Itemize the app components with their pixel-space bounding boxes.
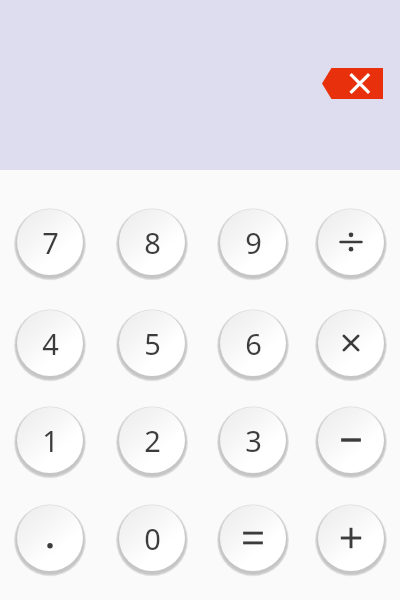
staticText: 9 bbox=[245, 223, 262, 262]
button[interactable]: 7 bbox=[16, 208, 84, 276]
button[interactable]: 5 bbox=[118, 309, 186, 377]
button[interactable] bbox=[16, 504, 84, 572]
button[interactable]: 9 bbox=[219, 208, 287, 276]
button[interactable]: 3 bbox=[219, 406, 287, 474]
staticText: 4 bbox=[42, 324, 59, 363]
button[interactable]: 1 bbox=[16, 406, 84, 474]
button[interactable] bbox=[219, 504, 287, 572]
button[interactable]: Delete bbox=[322, 68, 383, 99]
button[interactable]: 6 bbox=[219, 309, 287, 377]
staticText: 2 bbox=[144, 421, 161, 460]
button[interactable]: 4 bbox=[16, 309, 84, 377]
button[interactable]: 8 bbox=[118, 208, 186, 276]
button[interactable] bbox=[317, 208, 385, 276]
staticText: 6 bbox=[245, 324, 262, 363]
staticText: 7 bbox=[42, 223, 59, 262]
button[interactable] bbox=[317, 504, 385, 572]
staticText: 3 bbox=[245, 421, 262, 460]
button[interactable]: 2 bbox=[118, 406, 186, 474]
button[interactable] bbox=[317, 309, 385, 377]
staticText: 5 bbox=[144, 324, 161, 363]
button[interactable] bbox=[317, 406, 385, 474]
staticText: 1 bbox=[42, 421, 59, 460]
button[interactable]: 0 bbox=[118, 504, 186, 572]
staticText: 8 bbox=[144, 223, 161, 262]
staticText: 0 bbox=[144, 519, 161, 558]
